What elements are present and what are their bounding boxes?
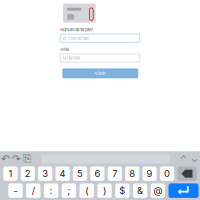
button[interactable]: 2 — [21, 166, 35, 181]
button[interactable]: 8 — [125, 166, 139, 181]
button[interactable]: 1 — [3, 166, 17, 181]
staticText: 2 — [25, 168, 31, 179]
staticText: 3 — [42, 168, 48, 179]
button[interactable]: 9 — [142, 166, 157, 181]
staticText: - — [13, 185, 17, 196]
button[interactable]: Redo — [11, 153, 22, 165]
button[interactable]: Undo — [0, 153, 11, 165]
button[interactable]: Next field — [189, 153, 200, 165]
staticText: 4 — [60, 168, 66, 179]
button[interactable]: 3 — [38, 166, 52, 181]
button[interactable]: 4 — [55, 166, 70, 181]
staticText: Mi tarjeta — [63, 56, 80, 60]
staticText: ( — [85, 185, 88, 196]
staticText: 9 — [147, 168, 153, 179]
button[interactable]: ( — [79, 183, 94, 198]
button[interactable]: ) — [97, 183, 112, 198]
staticText: ; — [67, 185, 70, 196]
button[interactable]: 6 — [90, 166, 104, 181]
staticText: ↷ — [12, 153, 21, 165]
staticText: 1 — [8, 168, 12, 179]
button[interactable]: & — [133, 183, 147, 198]
staticText: Número de tarjeta* — [60, 27, 93, 32]
staticText: $ — [119, 185, 125, 196]
staticText: 0 — [164, 168, 170, 179]
button[interactable]: : — [44, 183, 58, 198]
button[interactable]: 0 — [160, 166, 174, 181]
button[interactable]: 5 — [73, 166, 87, 181]
staticText: Alias — [60, 47, 69, 52]
button[interactable]: $ — [115, 183, 129, 198]
button[interactable]: Paste — [22, 153, 33, 165]
staticText: / — [32, 185, 35, 196]
staticText: : — [50, 185, 53, 196]
staticText: ) — [103, 185, 106, 196]
button[interactable]: @ — [151, 183, 165, 198]
button[interactable]: ; — [62, 183, 76, 198]
button[interactable]: Previous field — [178, 153, 189, 165]
staticText: ⌃ — [180, 153, 187, 165]
staticText: @ — [153, 185, 162, 196]
staticText: 5 — [77, 168, 83, 179]
staticText: Ej. 1234567890 — [63, 36, 90, 41]
staticText: ↶ — [1, 153, 10, 165]
button[interactable]: 7 — [108, 166, 122, 181]
staticText: 8 — [129, 168, 135, 179]
staticText: Añadir — [94, 71, 106, 76]
staticText: 7 — [112, 168, 117, 179]
button[interactable]: Añadir — [62, 68, 138, 78]
button[interactable]: / — [26, 183, 40, 198]
button[interactable]: Return — [168, 183, 198, 198]
button[interactable]: - — [8, 183, 23, 198]
button[interactable]: Delete — [177, 166, 197, 181]
staticText: 6 — [94, 168, 100, 179]
staticText: & — [137, 185, 143, 196]
staticText: ⌄ — [191, 153, 198, 165]
staticText: ⎘ — [23, 154, 32, 164]
